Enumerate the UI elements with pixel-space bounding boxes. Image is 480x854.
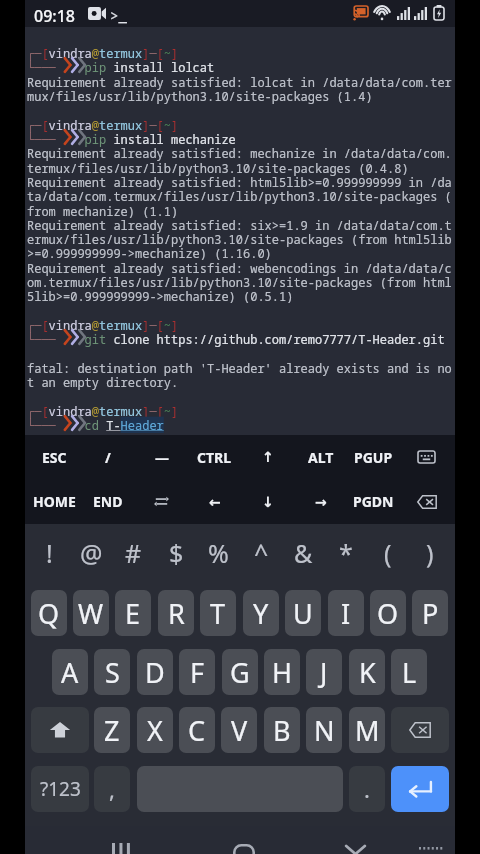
other: Backspace xyxy=(417,495,437,509)
staticText: → xyxy=(315,494,327,510)
button[interactable]: D xyxy=(137,649,173,695)
button[interactable]: Backspace xyxy=(391,707,449,753)
button[interactable]: R xyxy=(158,590,194,636)
button[interactable]: Enter xyxy=(391,766,449,812)
button[interactable]: A xyxy=(52,649,88,695)
staticText: ) xyxy=(426,536,434,570)
staticText: 09:18 xyxy=(34,5,75,27)
staticText: X xyxy=(147,712,163,749)
staticText: ( xyxy=(384,536,392,570)
staticText: H xyxy=(272,654,293,691)
button[interactable]: W xyxy=(73,590,109,636)
button[interactable]: Switch keyboard xyxy=(405,826,455,854)
button[interactable]: P xyxy=(412,590,448,636)
button[interactable]: ESC xyxy=(27,435,81,479)
staticText: . xyxy=(364,774,370,804)
staticText: / xyxy=(105,448,111,467)
staticText: O xyxy=(377,595,399,632)
button[interactable]: C xyxy=(179,707,215,753)
staticText: T xyxy=(210,595,226,632)
button[interactable]: / xyxy=(81,435,135,479)
staticText: fatal: destination path 'T-Header' alrea… xyxy=(27,360,452,376)
staticText: K xyxy=(359,654,376,691)
staticText: └─── pip install lolcat xyxy=(27,59,215,75)
button[interactable]: PGDN xyxy=(347,479,400,524)
button[interactable]: K xyxy=(349,649,385,695)
staticText: , xyxy=(109,774,115,804)
button[interactable]: H xyxy=(264,649,300,695)
staticText: @ xyxy=(80,536,103,570)
staticText: # xyxy=(125,536,142,570)
button[interactable]: N xyxy=(306,707,342,753)
button[interactable]: Backspace xyxy=(400,479,453,524)
button[interactable]: ?123 xyxy=(31,766,89,812)
button[interactable]: U xyxy=(285,590,321,636)
staticText: PGDN xyxy=(353,492,394,511)
staticText: >_ xyxy=(110,6,127,25)
staticText: J xyxy=(320,654,328,691)
button[interactable]: G xyxy=(222,649,258,695)
button[interactable]: V xyxy=(221,707,257,753)
button[interactable]: ↓ xyxy=(241,479,294,524)
button[interactable]: O xyxy=(370,590,406,636)
staticText: ┌─[vindra@termux]─[~] xyxy=(27,117,179,133)
button[interactable]: J xyxy=(306,649,342,695)
button[interactable]: B xyxy=(264,707,300,753)
button[interactable]: ↑ xyxy=(241,435,294,479)
other: Hide keyboard xyxy=(418,451,435,463)
other: Cast xyxy=(352,6,368,20)
button[interactable]: E xyxy=(115,590,151,636)
button[interactable]: Home xyxy=(214,826,274,854)
button[interactable]: → xyxy=(294,479,347,524)
button[interactable]: Hide keyboard xyxy=(400,435,453,479)
staticText: L xyxy=(402,654,417,691)
button[interactable]: — xyxy=(135,435,188,479)
button[interactable]: Z xyxy=(94,707,130,753)
button[interactable]: F xyxy=(179,649,215,695)
button[interactable]: Tab xyxy=(135,479,188,524)
button[interactable]: , xyxy=(94,766,130,812)
button[interactable]: Recents xyxy=(91,826,151,854)
button[interactable]: M xyxy=(349,707,385,753)
staticText: ┌─[vindra@termux]─[~] xyxy=(27,45,179,61)
button[interactable]: Y xyxy=(243,590,279,636)
button[interactable]: S xyxy=(94,649,130,695)
staticText: >=0.999999999->mechanize) (1.16.0) xyxy=(27,245,272,261)
button[interactable]: ← xyxy=(188,479,241,524)
staticText: Y xyxy=(253,595,269,632)
button[interactable]: HOME xyxy=(27,479,81,524)
button[interactable]: L xyxy=(391,649,427,695)
button[interactable]: . xyxy=(349,766,385,812)
staticText: A xyxy=(61,654,79,691)
button[interactable]: PGUP xyxy=(347,435,400,479)
staticText: Q xyxy=(38,595,60,632)
staticText: ↑ xyxy=(262,449,274,465)
button[interactable]: Hide keyboard xyxy=(325,826,385,854)
staticText: ┌─[vindra@termux]─[~] xyxy=(27,403,179,419)
staticText: V xyxy=(231,712,248,749)
button[interactable]: CTRL xyxy=(188,435,241,479)
button[interactable]: END xyxy=(81,479,135,524)
button[interactable]: Shift xyxy=(31,707,89,753)
staticText: S xyxy=(105,654,120,691)
staticText: I xyxy=(341,595,351,632)
staticText: └─── git clone https://github.com/remo77… xyxy=(27,331,445,347)
staticText: HOME xyxy=(33,492,76,511)
staticText: $ xyxy=(169,536,184,570)
button[interactable]: T xyxy=(200,590,236,636)
staticText: C xyxy=(188,712,206,749)
button[interactable]: X xyxy=(137,707,173,753)
staticText: t an empty directory. xyxy=(27,374,179,390)
button[interactable]: ALT xyxy=(294,435,347,479)
button[interactable]: I xyxy=(328,590,364,636)
staticText: ESC xyxy=(42,448,67,467)
staticText: Z xyxy=(104,712,120,749)
staticText: B xyxy=(273,712,291,749)
button[interactable]: Q xyxy=(31,590,67,636)
staticText: ta/data/com.termux/files/usr/lib/python3… xyxy=(27,188,452,204)
other: Recording xyxy=(88,7,106,20)
staticText: N xyxy=(314,712,335,749)
staticText: └─── cd T-Header xyxy=(27,417,164,433)
staticText: F xyxy=(190,654,205,691)
